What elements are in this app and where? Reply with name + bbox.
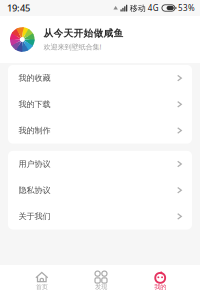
staticText: 我的制作 bbox=[18, 125, 50, 136]
button[interactable]: 从今天开始做咸鱼 bbox=[0, 16, 200, 63]
staticText: 19:45 bbox=[7, 2, 30, 14]
button[interactable]: 首页 bbox=[18, 265, 65, 300]
button[interactable]: 关于我们 bbox=[8, 203, 192, 229]
staticText: 我的下载 bbox=[18, 99, 50, 109]
staticText: 关于我们 bbox=[18, 211, 50, 221]
staticText: 移动 4G bbox=[130, 3, 159, 13]
staticText: 53% bbox=[178, 3, 195, 13]
button[interactable]: 用户协议 bbox=[8, 151, 192, 177]
staticText: 我的 bbox=[154, 283, 166, 291]
staticText: 我的收藏 bbox=[18, 73, 50, 83]
staticText: 首页 bbox=[36, 283, 48, 291]
staticText: 隐私协议 bbox=[18, 185, 50, 195]
button[interactable]: 我的 bbox=[137, 265, 184, 300]
button[interactable]: 隐私协议 bbox=[8, 177, 192, 203]
staticText: 从今天开始做咸鱼 bbox=[44, 27, 124, 39]
button[interactable]: 我的下载 bbox=[8, 91, 192, 117]
staticText: 用户协议 bbox=[18, 159, 50, 169]
button[interactable]: 我的制作 bbox=[8, 117, 192, 144]
button[interactable]: 发现 bbox=[77, 265, 124, 300]
button[interactable]: 我的收藏 bbox=[8, 65, 192, 91]
staticText: 发现 bbox=[95, 283, 107, 291]
staticText: 欢迎来到壁纸合集! bbox=[44, 42, 102, 52]
